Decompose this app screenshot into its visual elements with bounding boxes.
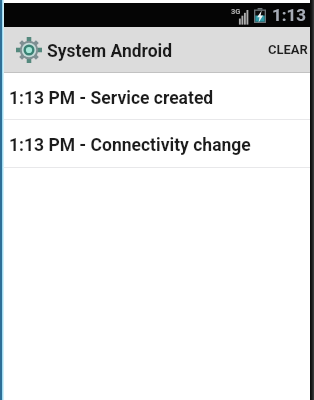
staticText: 1:13 PM - Service created xyxy=(9,88,214,109)
staticText: 1:13 xyxy=(272,5,307,25)
staticText: System Android xyxy=(47,41,173,62)
staticText: 1:13 PM - Connectivity change xyxy=(9,135,251,156)
button[interactable]: 1:13 PM - Connectivity change xyxy=(0,120,314,168)
staticText: 3G xyxy=(231,7,241,16)
button[interactable]: CLEAR xyxy=(256,27,314,72)
staticText: CLEAR xyxy=(268,42,308,57)
button[interactable]: 1:13 PM - Service created xyxy=(0,73,314,120)
other: App icon xyxy=(16,37,42,63)
